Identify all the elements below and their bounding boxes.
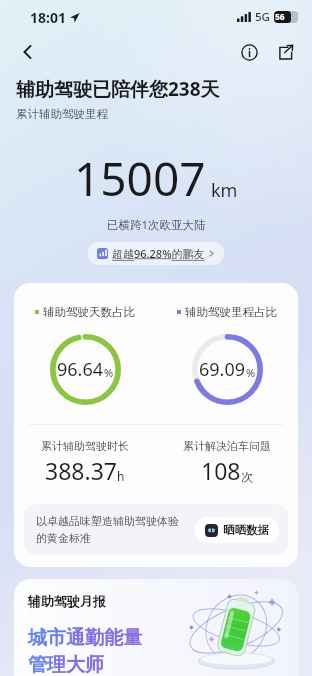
staticText: 69.09 (199, 357, 246, 382)
staticText: 辅助驾驶月报 (28, 593, 106, 609)
staticText: 96.64 (57, 357, 104, 382)
staticText: 18:01 (30, 8, 66, 27)
staticText: 辅助驾驶已陪伴您238天 (16, 76, 220, 102)
staticText: 15007 (74, 147, 206, 210)
staticText: h (117, 468, 125, 484)
button[interactable]: 晒晒数据 (195, 517, 279, 543)
button[interactable]: 超越96.28%的鹏友 (88, 242, 224, 265)
staticText: 56 (275, 11, 285, 23)
staticText: 以卓越品味塑造辅助驾驶体验 (36, 514, 179, 528)
staticText: 次 (241, 469, 253, 484)
staticText: 的黄金标准 (36, 531, 91, 545)
staticText: 累计辅助驾驶里程 (16, 107, 108, 121)
staticText: km (211, 178, 238, 203)
staticText: 已横跨1次欧亚大陆 (107, 217, 206, 233)
staticText: 辅助驾驶天数占比 (43, 305, 135, 319)
staticText: 晒晒数据 (223, 523, 269, 537)
staticText: 累计辅助驾驶时长 (41, 439, 129, 453)
staticText: 城市通勤能量 (28, 626, 142, 650)
button[interactable]: Share (270, 37, 300, 67)
staticText: 辅助驾驶里程占比 (185, 305, 277, 319)
staticText: 超越96.28%的鹏友 (112, 246, 205, 261)
button[interactable]: 辅助驾驶月报 (14, 579, 298, 676)
staticText: % (246, 365, 256, 380)
staticText: 108 (201, 455, 241, 486)
staticText: 累计解决泊车问题 (183, 439, 271, 453)
staticText: 5G (255, 9, 270, 25)
button[interactable]: Back (12, 36, 44, 68)
staticText: 管理大师 (28, 653, 104, 676)
staticText: % (104, 365, 114, 380)
button[interactable]: Info (234, 37, 264, 67)
staticText: 388.37 (45, 455, 117, 486)
